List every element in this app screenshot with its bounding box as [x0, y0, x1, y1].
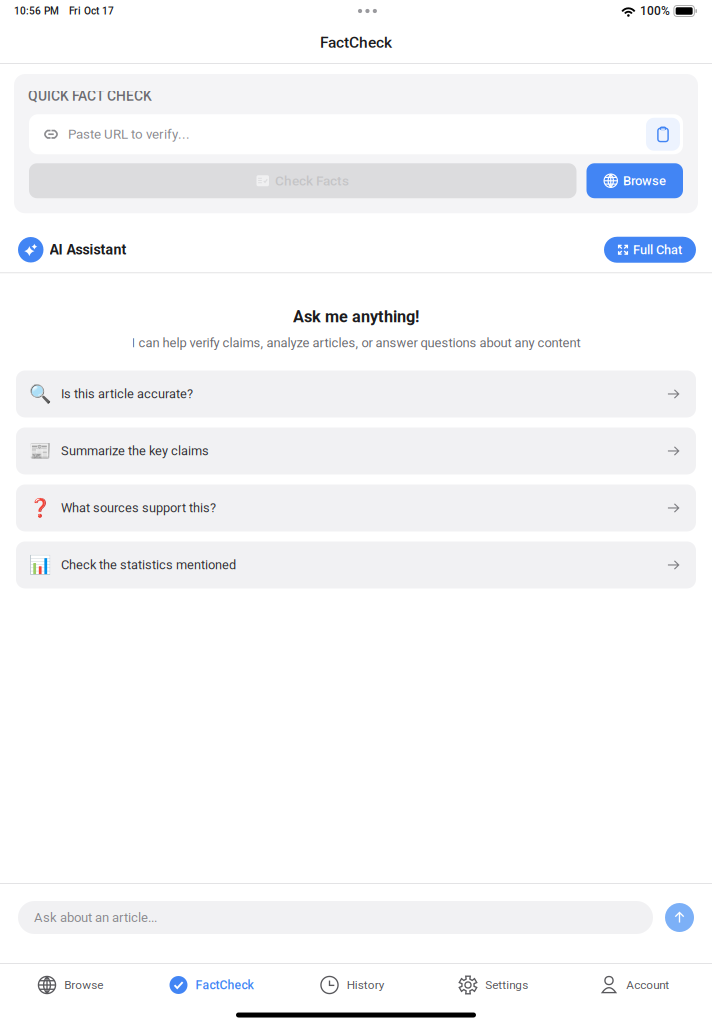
button[interactable]: ❓ [16, 484, 696, 531]
staticText: I can help verify claims, analyze articl… [131, 335, 580, 350]
button[interactable]: Full Chat [604, 237, 696, 263]
staticText: FactCheck [320, 33, 392, 51]
staticText: Ask me anything! [293, 307, 419, 326]
staticText: QUICK FACT CHECK [28, 88, 152, 104]
staticText: Summarize the key claims [61, 443, 209, 458]
staticText: Check the statistics mentioned [61, 557, 236, 572]
staticText: History [347, 978, 385, 992]
staticText: Ask about an article... [34, 910, 157, 925]
staticText: FactCheck [195, 978, 253, 992]
staticText: 📊 [29, 554, 51, 575]
staticText: AI Assistant [49, 241, 126, 258]
staticText: Is this article accurate? [61, 386, 193, 401]
staticText: 📰 [29, 440, 51, 461]
staticText: 🔍 [29, 383, 51, 404]
button[interactable]: 🔍 [16, 370, 696, 417]
button[interactable]: Send [665, 903, 694, 932]
staticText: Browse [64, 978, 103, 992]
button[interactable]: Browse [0, 964, 141, 1006]
staticText: Check Facts [275, 173, 349, 189]
button[interactable]: Paste from clipboard [646, 118, 680, 151]
staticText: Browse [623, 173, 666, 188]
staticText: Settings [485, 978, 528, 992]
button[interactable]: 📰 [16, 427, 696, 474]
staticText: 100% [640, 4, 670, 18]
staticText: 10:56 PM [14, 5, 59, 17]
button[interactable]: FactCheck [141, 964, 282, 1006]
staticText: Account [626, 978, 669, 992]
button[interactable]: 📊 [16, 541, 696, 588]
button[interactable]: Account [564, 964, 705, 1006]
staticText: Full Chat [633, 242, 682, 257]
staticText: Paste URL to verify... [68, 126, 190, 142]
button[interactable]: Settings [423, 964, 564, 1006]
button[interactable]: Check Facts [29, 163, 576, 198]
button[interactable]: History [282, 964, 423, 1006]
staticText: Fri Oct 17 [69, 5, 114, 17]
staticText: ❓ [29, 497, 51, 518]
button[interactable]: Browse [586, 163, 683, 198]
staticText: What sources support this? [61, 500, 216, 515]
